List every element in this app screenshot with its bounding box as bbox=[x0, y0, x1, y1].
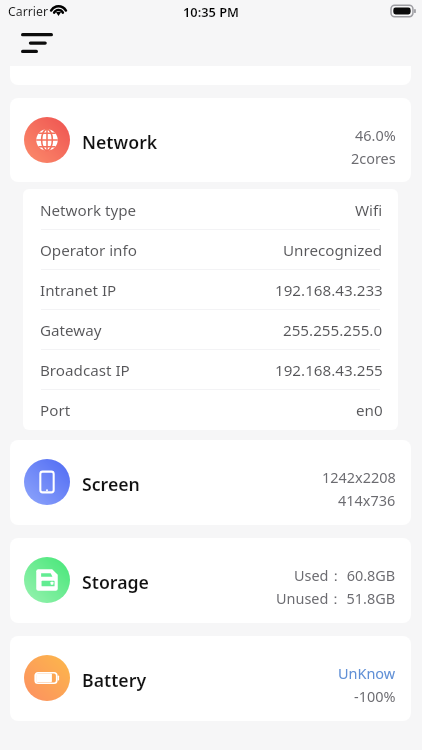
staticText: 414x736 bbox=[338, 491, 396, 511]
button[interactable]: Port bbox=[40, 392, 383, 429]
button[interactable]: Network bbox=[10, 98, 411, 182]
staticText: Port bbox=[40, 400, 71, 421]
staticText: -100% bbox=[354, 687, 396, 707]
staticText: Carrier bbox=[8, 3, 49, 20]
button[interactable]: Operator info bbox=[40, 232, 383, 269]
button[interactable]: Gateway bbox=[40, 312, 383, 349]
staticText: Screen bbox=[82, 472, 140, 496]
staticText: 192.168.43.255 bbox=[275, 360, 383, 381]
staticText: 46.0% bbox=[355, 126, 396, 146]
staticText: Used： 60.8GB bbox=[294, 566, 396, 586]
staticText: Broadcast IP bbox=[40, 360, 130, 381]
staticText: Unused： 51.8GB bbox=[276, 589, 396, 609]
staticText: 1242x2208 bbox=[322, 468, 396, 488]
button[interactable]: Battery bbox=[10, 636, 411, 721]
staticText: Network bbox=[82, 130, 158, 154]
staticText: 10:35 PM bbox=[183, 3, 239, 20]
staticText: UnKnow bbox=[338, 664, 396, 684]
button[interactable]: Network type bbox=[40, 192, 383, 229]
staticText: 2cores bbox=[351, 149, 396, 169]
staticText: 255.255.255.0 bbox=[283, 320, 383, 341]
staticText: Battery bbox=[82, 668, 147, 692]
staticText: Unrecognized bbox=[283, 240, 383, 261]
staticText: Wifi bbox=[355, 200, 383, 221]
staticText: Gateway bbox=[40, 320, 102, 341]
staticText: 192.168.43.233 bbox=[275, 280, 383, 301]
button[interactable]: Intranet IP bbox=[40, 272, 383, 309]
staticText: Storage bbox=[82, 570, 149, 594]
button[interactable]: Menu bbox=[13, 25, 61, 61]
button[interactable]: Broadcast IP bbox=[40, 352, 383, 389]
staticText: Operator info bbox=[40, 240, 137, 261]
staticText: en0 bbox=[356, 400, 383, 421]
staticText: Intranet IP bbox=[40, 280, 117, 301]
button[interactable]: Screen bbox=[10, 440, 411, 525]
button[interactable]: Storage bbox=[10, 538, 411, 623]
staticText: Network type bbox=[40, 200, 137, 221]
